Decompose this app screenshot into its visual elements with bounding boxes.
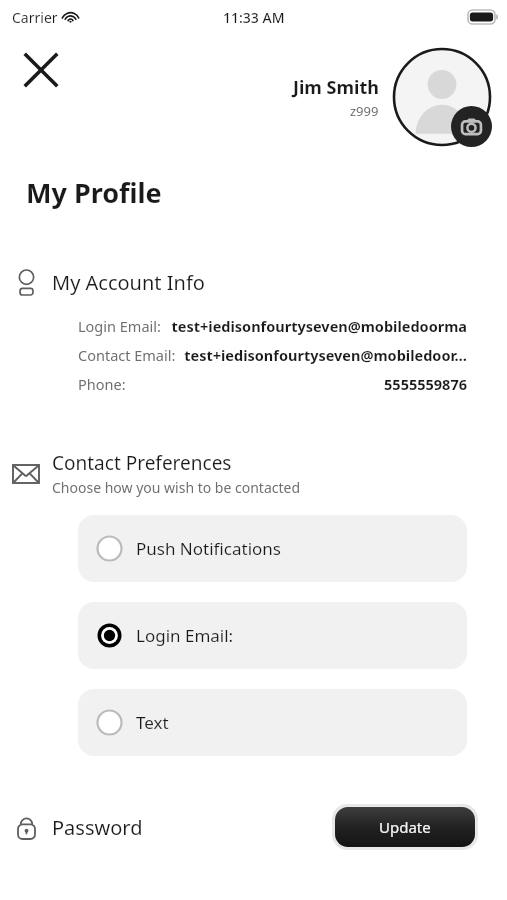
staticText: Phone: [78,374,126,394]
staticText: Contact Email: [78,345,176,365]
button[interactable]: Close [18,47,64,93]
staticText: Choose how you wish to be contacted [52,478,301,497]
staticText: Push Notifications [136,537,281,560]
button[interactable]: Update [335,807,475,847]
staticText: 11:33 AM [223,8,285,27]
button[interactable]: Login Email: [78,602,467,669]
staticText: Update [379,817,431,837]
staticText: My Profile [26,174,162,211]
staticText: Jim Smith [293,75,379,100]
staticText: z999 [350,102,379,120]
staticText: Contact Preferences [52,450,232,476]
staticText: Password [52,814,143,841]
staticText: My Account Info [52,269,205,296]
button[interactable]: Change profile photo [392,47,492,147]
staticText: Login Email: [136,624,234,647]
button[interactable]: Push Notifications [78,515,467,582]
staticText: 5555559876 [132,374,467,394]
staticText: Text [136,711,169,734]
staticText: test+iedisonfourtyseven@mobiledoor… [182,345,467,365]
button[interactable]: Text [78,689,467,756]
staticText: Login Email: [78,316,161,336]
staticText: test+iedisonfourtyseven@mobiledoorma… [167,316,467,336]
staticText: Carrier [12,8,58,27]
